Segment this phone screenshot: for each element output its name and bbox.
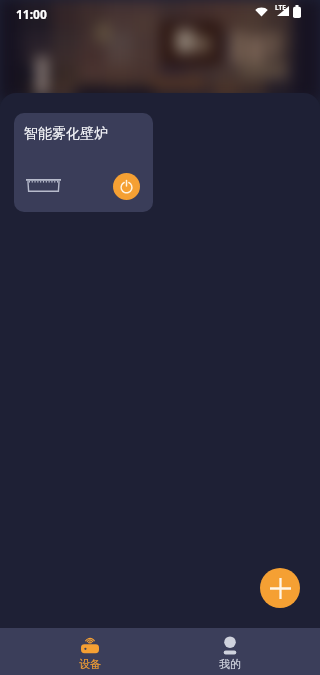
staticText: LTE <box>275 3 286 12</box>
button[interactable]: 智能雾化壁炉 <box>14 113 153 212</box>
button[interactable]: 设备 <box>59 628 121 675</box>
button[interactable]: Add device <box>260 568 300 608</box>
button[interactable]: 我的 <box>199 628 261 675</box>
staticText: 11:00 <box>16 6 47 22</box>
button[interactable]: Power toggle <box>113 173 140 200</box>
staticText: 智能雾化壁炉 <box>24 125 108 143</box>
staticText: 设备 <box>79 657 101 671</box>
staticText: 我的 <box>219 657 241 671</box>
